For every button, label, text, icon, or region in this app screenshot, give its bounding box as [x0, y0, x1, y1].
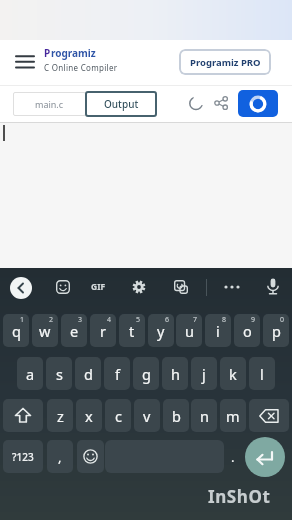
staticText: z	[57, 406, 64, 426]
button[interactable]: y	[148, 314, 174, 347]
staticText: GIF	[91, 281, 106, 293]
button[interactable]: b	[163, 399, 189, 432]
button[interactable]: n	[191, 399, 217, 432]
staticText: h	[171, 364, 180, 384]
staticText: P	[44, 46, 51, 60]
button[interactable]	[245, 437, 285, 477]
button[interactable]: f	[104, 357, 130, 390]
button[interactable]	[171, 277, 191, 297]
staticText: ,	[58, 448, 62, 466]
staticText: f	[115, 364, 120, 384]
staticText: x	[85, 406, 93, 426]
button[interactable]: r	[90, 314, 116, 347]
staticText: t	[129, 321, 135, 341]
button[interactable]: ,	[47, 440, 73, 473]
button[interactable]: t	[119, 314, 145, 347]
staticText: Programiz PRO	[190, 56, 261, 69]
staticText: 2	[49, 315, 54, 325]
staticText: .	[231, 448, 235, 466]
button[interactable]: g	[133, 357, 159, 390]
staticText: e	[70, 321, 79, 341]
button[interactable]: Programiz PRO	[179, 49, 271, 75]
staticText: ?123	[12, 450, 34, 464]
staticText: Output	[104, 97, 139, 111]
button[interactable]: l	[249, 357, 275, 390]
staticText: 1	[20, 315, 25, 325]
button[interactable]	[249, 399, 289, 432]
staticText: n	[200, 406, 209, 426]
staticText: v	[143, 406, 151, 426]
staticText: l	[260, 364, 264, 384]
staticText: 5	[136, 315, 141, 325]
button[interactable]: q	[3, 314, 29, 347]
staticText: 4	[107, 315, 112, 325]
button[interactable]: c	[105, 399, 131, 432]
staticText: p	[272, 321, 281, 341]
button[interactable]: .	[226, 440, 240, 473]
staticText: c	[115, 406, 122, 426]
button[interactable]	[211, 93, 231, 113]
staticText: a	[26, 364, 35, 384]
staticText: k	[229, 364, 237, 384]
button[interactable]: p	[263, 314, 289, 347]
staticText: m	[226, 406, 240, 426]
button[interactable]: e	[61, 314, 87, 347]
button[interactable]: o	[234, 314, 260, 347]
staticText: InShOt	[208, 485, 271, 508]
button[interactable]: m	[220, 399, 246, 432]
button[interactable]	[221, 277, 243, 297]
button[interactable]	[186, 93, 206, 113]
staticText: w	[39, 321, 51, 341]
staticText: 7	[193, 315, 198, 325]
staticText: rogramiz	[51, 46, 96, 60]
staticText: 9	[251, 315, 256, 325]
button[interactable]	[12, 49, 38, 75]
button[interactable]: w	[32, 314, 58, 347]
button[interactable]: Output	[85, 91, 157, 117]
button[interactable]: i	[205, 314, 231, 347]
button[interactable]: ?123	[3, 440, 43, 473]
staticText: o	[243, 321, 252, 341]
button[interactable]: main.c	[13, 92, 86, 116]
button[interactable]	[10, 277, 32, 299]
staticText: y	[157, 321, 165, 341]
staticText: 3	[78, 315, 83, 325]
staticText: 0	[280, 315, 285, 325]
staticText: b	[172, 406, 181, 426]
button[interactable]: h	[162, 357, 188, 390]
button[interactable]: GIF	[85, 277, 111, 297]
button[interactable]: j	[191, 357, 217, 390]
button[interactable]	[53, 277, 73, 297]
button[interactable]: x	[76, 399, 102, 432]
staticText: u	[185, 321, 194, 341]
button[interactable]	[77, 440, 104, 473]
button[interactable]: z	[47, 399, 73, 432]
button[interactable]: a	[17, 357, 43, 390]
staticText: C Online Compiler	[44, 62, 118, 73]
button[interactable]	[129, 277, 149, 297]
staticText: s	[56, 364, 63, 384]
staticText: d	[84, 364, 93, 384]
button[interactable]	[262, 276, 284, 298]
staticText: j	[202, 364, 206, 384]
button[interactable]: s	[46, 357, 72, 390]
staticText: 8	[222, 315, 227, 325]
staticText: i	[216, 321, 220, 341]
staticText: g	[142, 364, 151, 384]
button[interactable]: u	[176, 314, 202, 347]
button[interactable]: d	[75, 357, 101, 390]
button[interactable]	[238, 90, 278, 117]
button[interactable]	[3, 399, 43, 432]
staticText: r	[100, 321, 106, 341]
staticText: q	[12, 321, 21, 341]
staticText: main.c	[35, 98, 64, 110]
button[interactable]: v	[134, 399, 160, 432]
button[interactable]: k	[220, 357, 246, 390]
staticText: 6	[165, 315, 170, 325]
